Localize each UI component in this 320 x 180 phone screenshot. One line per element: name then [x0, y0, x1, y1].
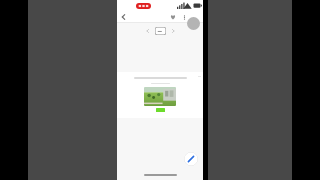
button[interactable]: Favourite	[168, 12, 178, 22]
button[interactable]: Next	[169, 27, 177, 35]
button[interactable]: Back	[119, 12, 129, 22]
button[interactable]: Previous	[144, 27, 152, 35]
button[interactable]	[144, 87, 176, 106]
button[interactable]: Compose	[184, 152, 198, 166]
button[interactable]: Card view	[155, 27, 166, 35]
button[interactable]: More options	[180, 13, 189, 22]
button[interactable]	[156, 108, 165, 112]
button[interactable]: Account	[187, 17, 200, 30]
button[interactable]	[117, 72, 203, 118]
